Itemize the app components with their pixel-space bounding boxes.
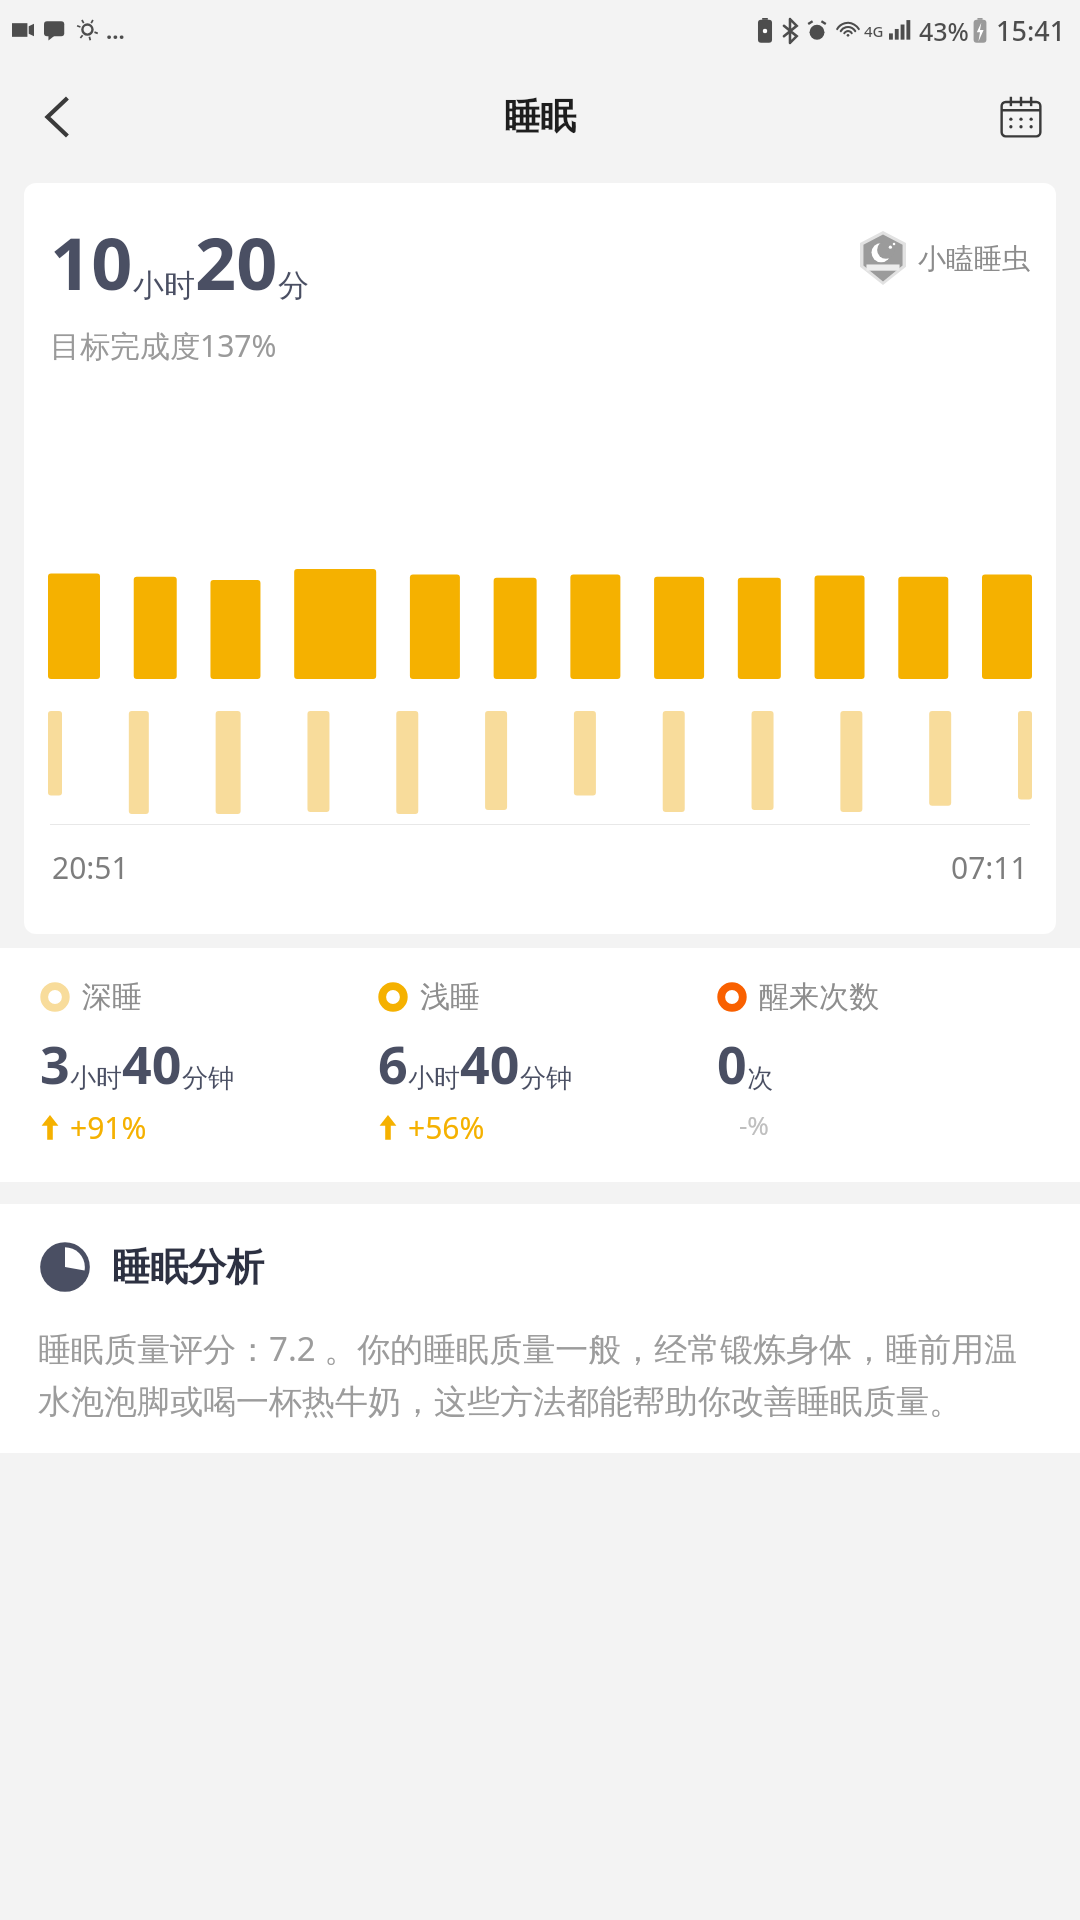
staticText: 07:11 xyxy=(951,847,1028,888)
staticText: 0 xyxy=(717,1028,747,1099)
staticText: +56% xyxy=(408,1107,485,1148)
staticText: 小时 xyxy=(408,1062,460,1095)
staticText: 睡眠质量评分：7.2 。你的睡眠质量一般，经常锻炼身体，睡前用温水泡泡脚或喝一杯… xyxy=(38,1326,1046,1423)
staticText: 分钟 xyxy=(182,1062,234,1095)
staticText: 10 xyxy=(50,213,133,311)
staticText: 分 xyxy=(278,266,309,305)
button[interactable]: Calendar xyxy=(986,82,1056,152)
staticText: 40 xyxy=(122,1028,182,1099)
staticText: -% xyxy=(739,1107,769,1142)
staticText: 3 xyxy=(40,1028,70,1099)
staticText: 目标完成度137% xyxy=(50,325,277,366)
button[interactable]: 醒来次数 xyxy=(717,978,1056,1142)
staticText: +91% xyxy=(70,1107,147,1148)
staticText: 43% xyxy=(919,14,969,48)
staticText: 20:51 xyxy=(52,847,129,888)
button[interactable]: 10 xyxy=(24,183,1056,934)
staticText: 15:41 xyxy=(996,12,1066,49)
staticText: 4G xyxy=(864,21,884,41)
staticText: 睡眠分析 xyxy=(112,1243,264,1291)
button[interactable]: 深睡 xyxy=(40,978,378,1148)
button[interactable]: Back xyxy=(22,81,94,153)
staticText: 睡眠 xyxy=(504,94,576,139)
staticText: 醒来次数 xyxy=(759,978,879,1016)
staticText: 深睡 xyxy=(82,978,142,1016)
staticText: 6 xyxy=(378,1028,408,1099)
staticText: 小时 xyxy=(70,1062,122,1095)
staticText: 浅睡 xyxy=(420,978,480,1016)
staticText: … xyxy=(106,15,125,45)
staticText: 分钟 xyxy=(520,1062,572,1095)
staticText: 小时 xyxy=(133,266,195,305)
staticText: 次 xyxy=(747,1062,773,1095)
staticText: 20 xyxy=(195,213,278,311)
button[interactable]: 浅睡 xyxy=(378,978,717,1148)
staticText: 40 xyxy=(460,1028,520,1099)
staticText: 小瞌睡虫 xyxy=(918,241,1030,276)
